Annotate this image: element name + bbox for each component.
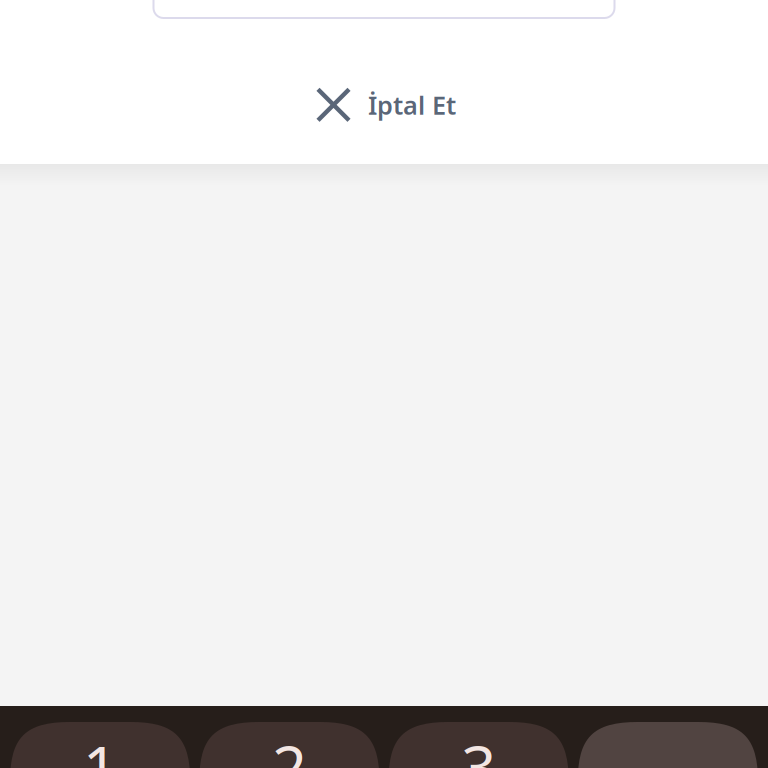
staticText: 3	[461, 726, 496, 768]
staticText: İptal Et	[368, 88, 456, 122]
button[interactable]: 2	[199, 722, 379, 768]
staticText: 2	[272, 726, 307, 768]
button[interactable]: Delete	[578, 722, 758, 768]
button[interactable]: İptal Et	[305, 80, 463, 130]
button[interactable]: 1	[10, 722, 190, 768]
staticText: 1	[83, 726, 118, 768]
button[interactable]: 3	[388, 722, 569, 768]
